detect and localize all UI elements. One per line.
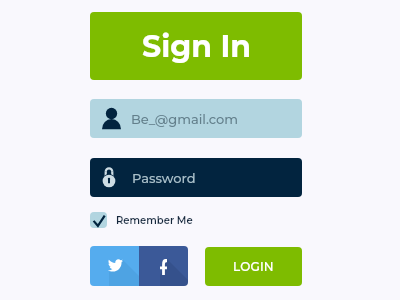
button[interactable]: Remember Me	[90, 212, 193, 228]
button[interactable]: Sign In	[90, 12, 302, 80]
button[interactable]: Password	[90, 158, 302, 197]
button[interactable]: LOGIN	[205, 247, 302, 286]
staticText: Password	[132, 170, 196, 186]
staticText: LOGIN	[233, 259, 274, 274]
staticText: Remember Me	[116, 214, 193, 226]
button[interactable]: Sign in with Facebook	[139, 246, 188, 286]
staticText: Be_@gmail.com	[131, 111, 239, 127]
staticText: Sign In	[142, 28, 251, 65]
button[interactable]: Be_@gmail.com	[90, 99, 302, 138]
button[interactable]: Sign in with Twitter	[90, 246, 139, 286]
